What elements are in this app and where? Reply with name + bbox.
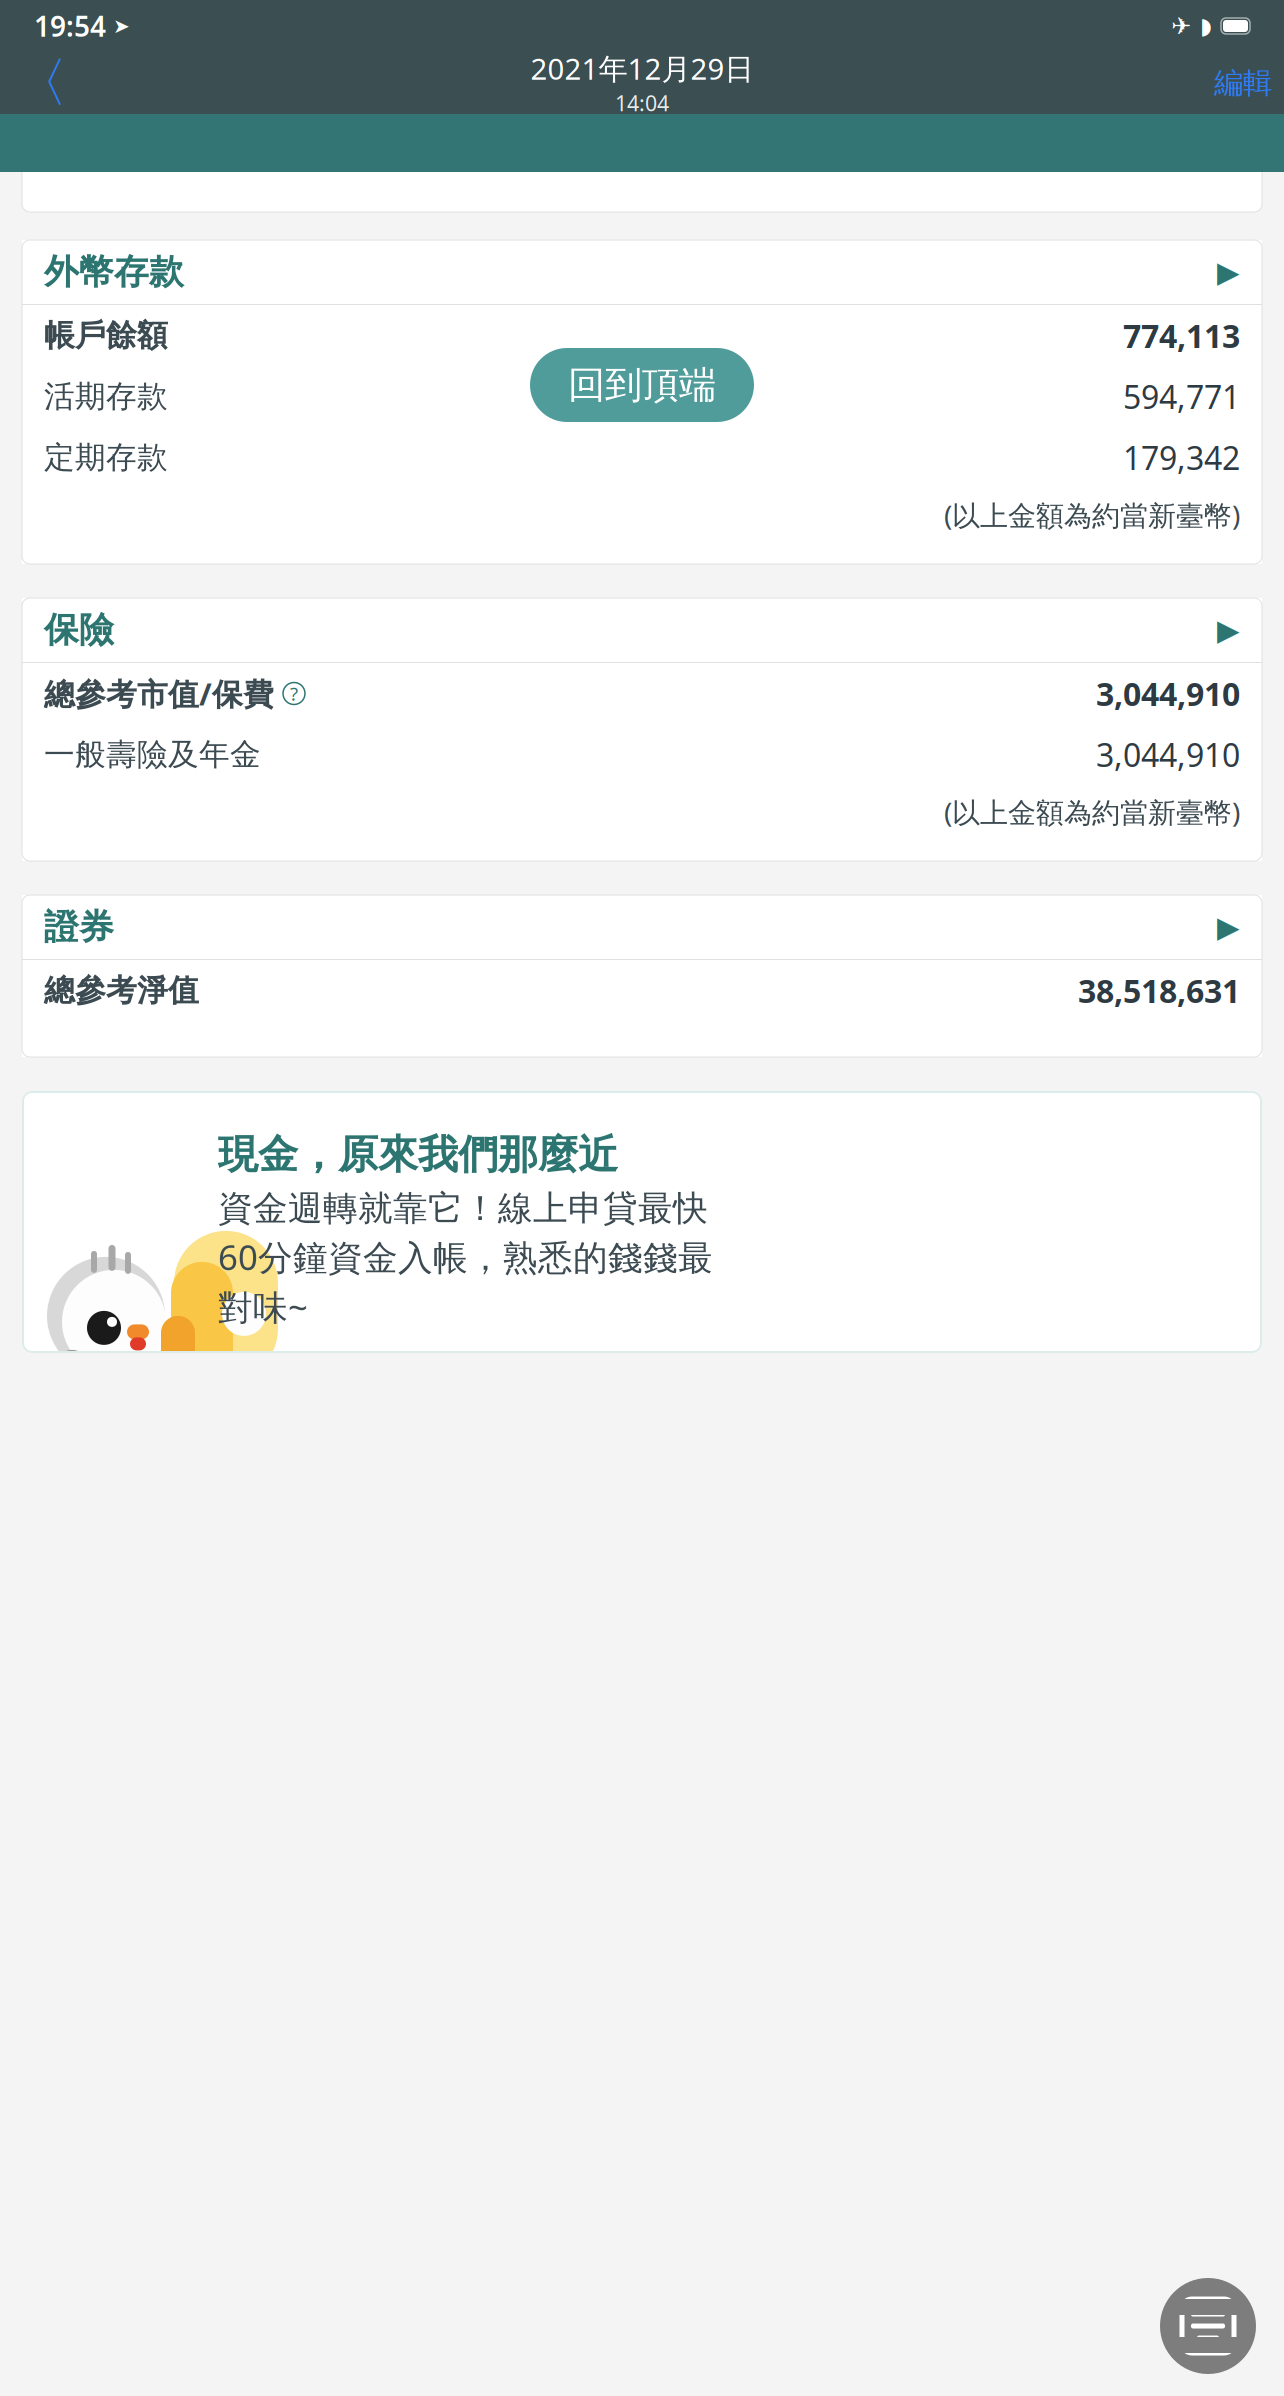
- staticText: 總參考淨值: [44, 972, 199, 1009]
- staticText: 一般壽險及年金: [44, 736, 261, 773]
- staticText: 保險: [44, 609, 114, 651]
- button[interactable]: 保險: [22, 598, 1262, 662]
- button[interactable]: 回到頂端: [530, 348, 754, 422]
- staticText: ◗: [1200, 13, 1212, 39]
- staticText: 19:54: [34, 7, 106, 45]
- staticText: ?: [290, 681, 298, 706]
- staticText: (以上金額為約當新臺幣): [944, 496, 1240, 534]
- button[interactable]: 編輯: [1212, 56, 1274, 110]
- staticText: 14:04: [615, 89, 669, 117]
- staticText: 資金週轉就靠它！線上申貸最快: [218, 1187, 708, 1230]
- staticText: 外幣存款: [44, 251, 184, 293]
- button[interactable]: 證券: [22, 895, 1262, 959]
- button[interactable]: 返回: [10, 56, 72, 110]
- staticText: ▶: [1217, 255, 1240, 289]
- button[interactable]: 掃描: [1156, 2274, 1260, 2378]
- staticText: 對味~: [218, 1284, 308, 1330]
- staticText: 總參考市值/保費: [44, 673, 274, 714]
- staticText: 3,044,910: [1096, 733, 1240, 776]
- staticText: 現金，原來我們那麼近: [218, 1130, 618, 1179]
- staticText: 編輯: [1214, 65, 1272, 101]
- button[interactable]: 現金，原來我們那麼近: [22, 1091, 1262, 1353]
- staticText: ✈: [1171, 12, 1191, 40]
- staticText: ▶: [1217, 910, 1240, 944]
- staticText: 60分鐘資金入帳，熟悉的錢錢最: [218, 1234, 713, 1280]
- staticText: 594,771: [1123, 375, 1240, 418]
- staticText: 179,342: [1123, 436, 1240, 479]
- staticText: 活期存款: [44, 378, 168, 415]
- staticText: (以上金額為約當新臺幣): [944, 793, 1240, 831]
- staticText: 2021年12月29日: [530, 49, 753, 88]
- staticText: 〈: [14, 50, 67, 116]
- staticText: 證券: [44, 906, 114, 948]
- button[interactable]: 外幣存款: [22, 240, 1262, 304]
- staticText: 38,518,631: [1078, 969, 1240, 1012]
- staticText: 3,044,910: [1096, 672, 1240, 715]
- staticText: ▶: [1217, 613, 1240, 647]
- staticText: 774,113: [1123, 314, 1240, 357]
- staticText: 回到頂端: [568, 362, 716, 408]
- staticText: 定期存款: [44, 439, 168, 476]
- staticText: 帳戶餘額: [44, 317, 168, 354]
- staticText: ➤: [113, 15, 130, 37]
